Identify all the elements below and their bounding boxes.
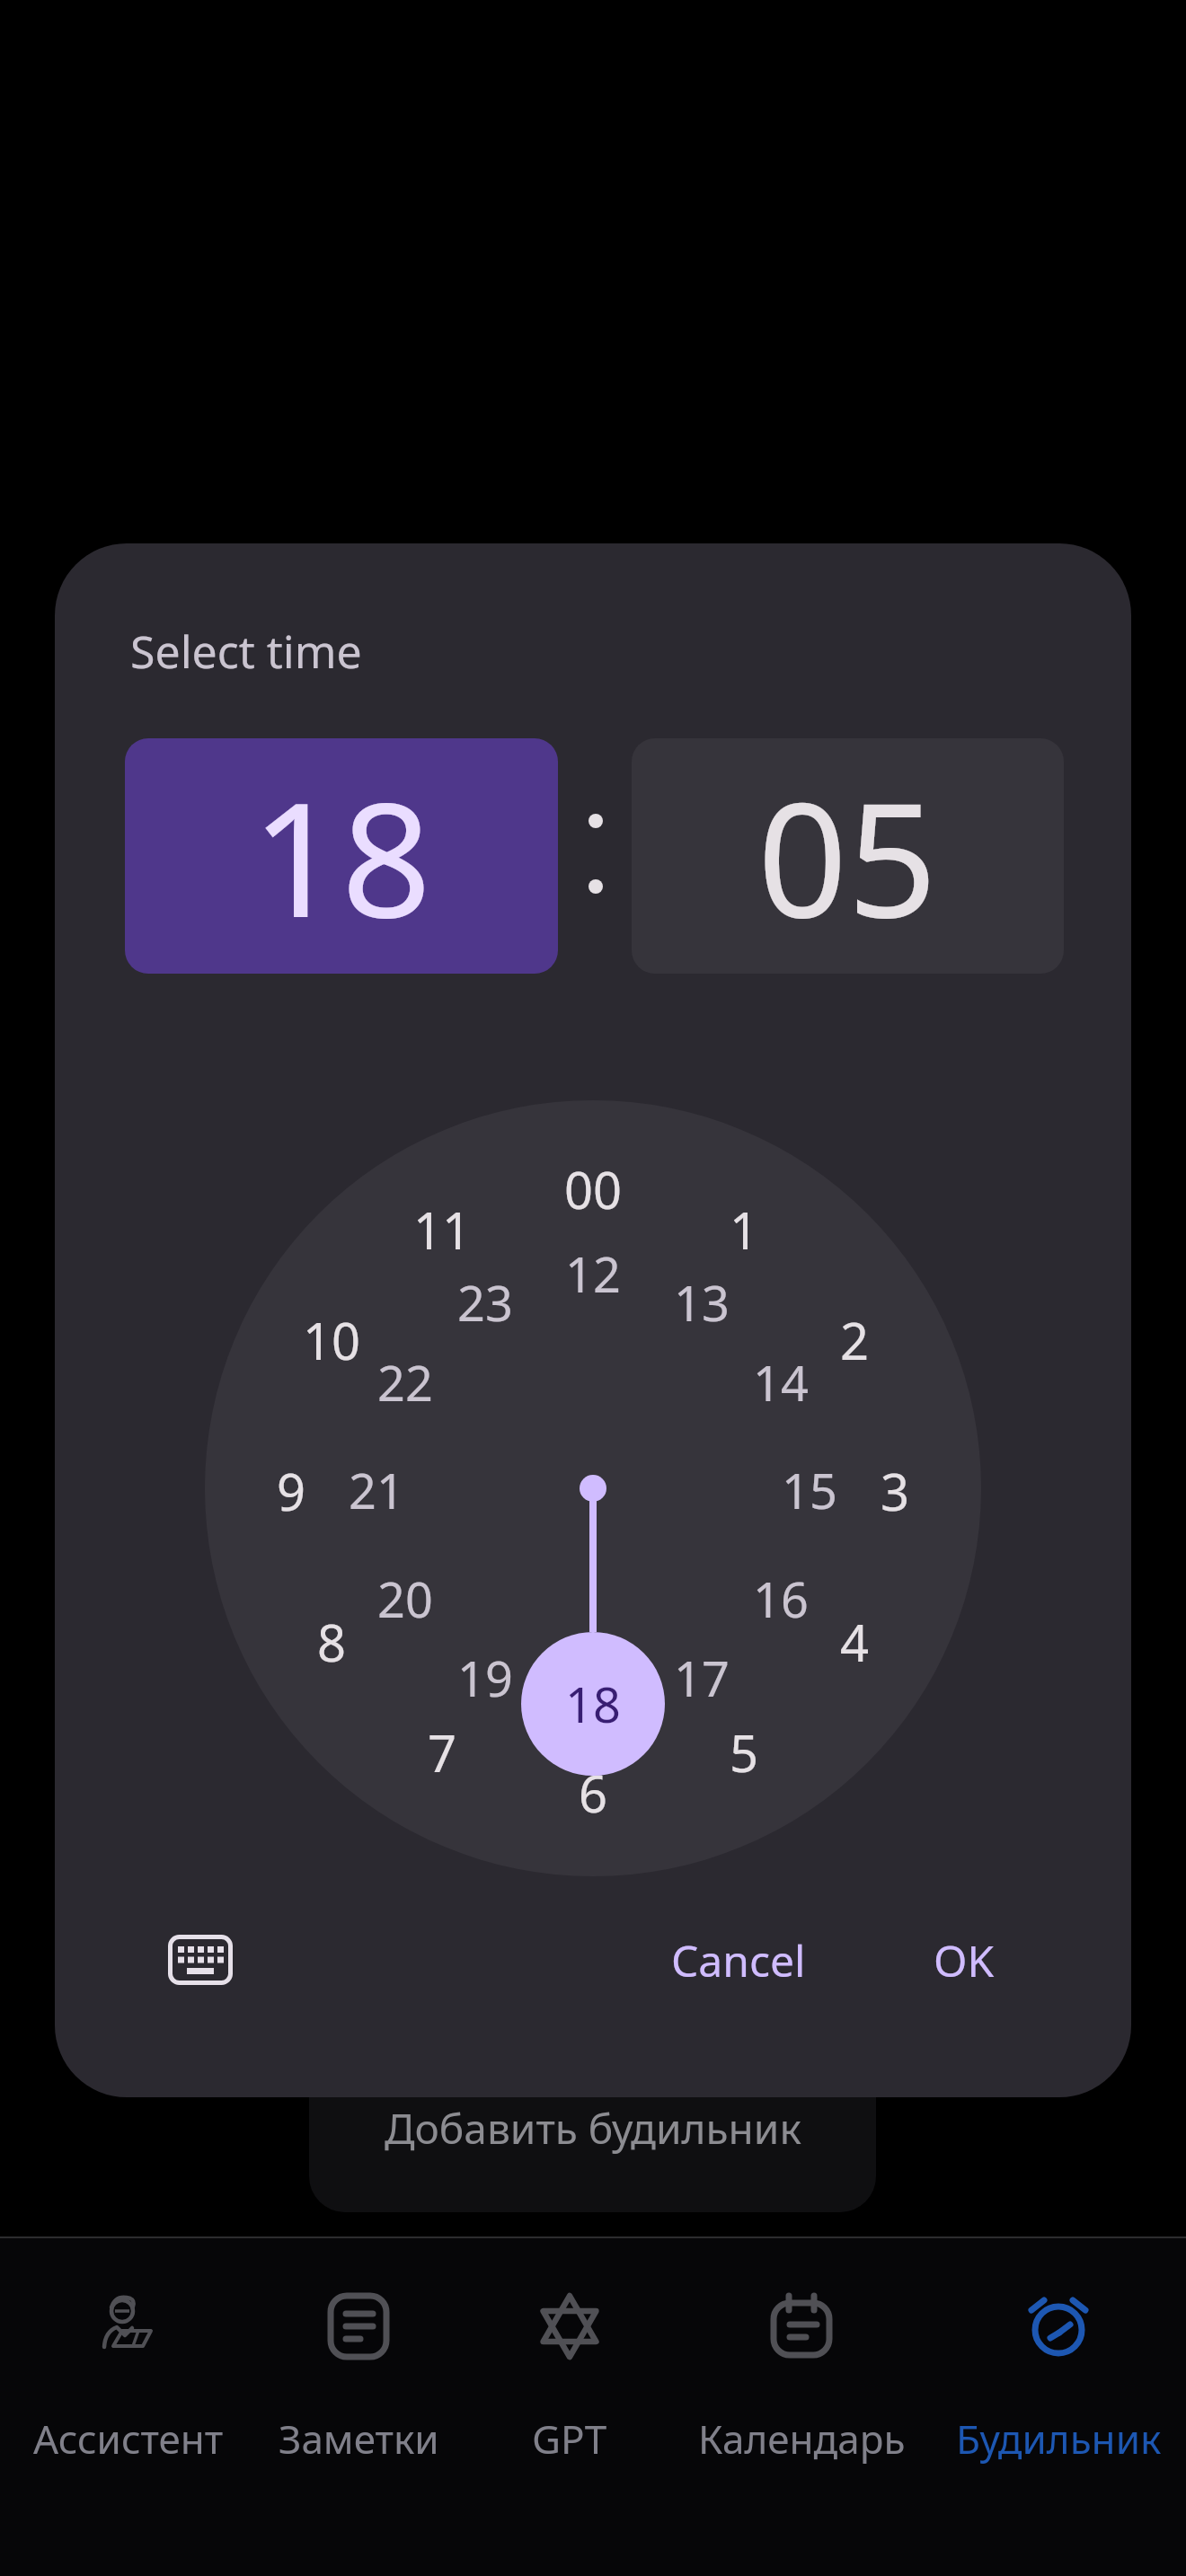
staticText: 10 bbox=[303, 1306, 361, 1369]
staticText: Добавить будильник bbox=[385, 2100, 801, 2157]
staticText: 3 bbox=[881, 1457, 910, 1520]
staticText: Cancel bbox=[671, 1931, 806, 1989]
button[interactable]: OK bbox=[901, 1924, 1027, 1996]
staticText: OK bbox=[934, 1931, 995, 1989]
button[interactable] bbox=[309, 2039, 876, 2212]
staticText: 18 bbox=[252, 749, 432, 963]
staticText: 12 bbox=[565, 1240, 621, 1303]
button[interactable]: 18 bbox=[125, 738, 558, 974]
button[interactable] bbox=[168, 1928, 233, 1991]
staticText: 05 bbox=[757, 749, 938, 963]
staticText: 1 bbox=[730, 1195, 759, 1258]
staticText: 20 bbox=[377, 1566, 433, 1628]
staticText: 00 bbox=[564, 1155, 623, 1218]
staticText: Select time bbox=[130, 621, 362, 675]
staticText: GPT bbox=[532, 2412, 607, 2466]
staticText: 17 bbox=[674, 1645, 730, 1707]
staticText: 19 bbox=[457, 1645, 513, 1707]
staticText: 13 bbox=[674, 1269, 730, 1332]
staticText: 8 bbox=[317, 1608, 347, 1671]
staticText: 9 bbox=[277, 1457, 306, 1520]
button[interactable]: Cancel bbox=[640, 1924, 837, 1996]
staticText: 21 bbox=[349, 1457, 404, 1520]
staticText: 15 bbox=[782, 1457, 837, 1520]
staticText: 6 bbox=[579, 1759, 608, 1822]
staticText: Заметки bbox=[279, 2412, 439, 2466]
button[interactable]: GPT bbox=[457, 2263, 682, 2515]
staticText: Ассистент bbox=[33, 2412, 224, 2466]
staticText: 18 bbox=[565, 1671, 621, 1737]
staticText: 16 bbox=[753, 1566, 809, 1628]
button[interactable]: 05 bbox=[632, 738, 1064, 974]
staticText: 2 bbox=[840, 1306, 870, 1369]
button[interactable]: Ассистент bbox=[16, 2263, 241, 2515]
staticText: 22 bbox=[377, 1349, 433, 1412]
staticText: 23 bbox=[457, 1269, 513, 1332]
staticText: Календарь bbox=[698, 2412, 906, 2466]
staticText: 5 bbox=[730, 1718, 759, 1781]
button[interactable]: Заметки bbox=[246, 2263, 471, 2515]
button[interactable]: Будильник bbox=[946, 2263, 1171, 2515]
staticText: Будильник bbox=[956, 2412, 1162, 2466]
staticText: 11 bbox=[413, 1195, 472, 1258]
staticText: 14 bbox=[753, 1349, 809, 1412]
button[interactable]: Календарь bbox=[689, 2263, 914, 2515]
staticText: 7 bbox=[428, 1718, 457, 1781]
staticText: 4 bbox=[840, 1608, 870, 1671]
